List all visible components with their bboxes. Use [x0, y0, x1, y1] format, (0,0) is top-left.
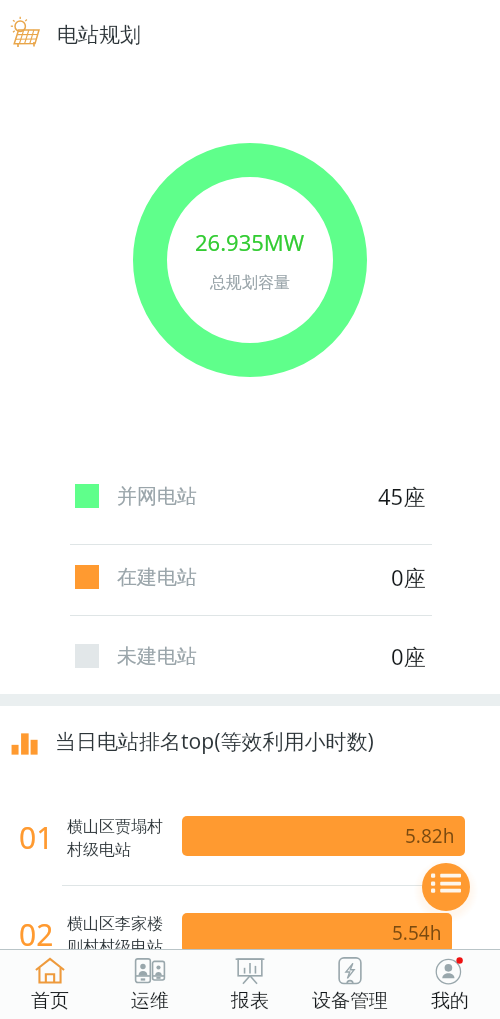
button[interactable]: 01 — [0, 790, 500, 882]
button[interactable]: 并网电站 — [0, 466, 500, 526]
staticText: 横山区李家楼 — [67, 914, 163, 934]
button[interactable]: 列表 — [422, 863, 470, 911]
staticText: 0座 — [391, 562, 426, 592]
staticText: 并网电站 — [117, 484, 197, 509]
button[interactable]: 我的 — [400, 950, 500, 1019]
staticText: 当日电站排名top(等效利用小时数) — [55, 727, 374, 756]
staticText: 在建电站 — [117, 565, 197, 590]
button[interactable]: 报表 — [200, 950, 300, 1019]
button[interactable]: 设备管理 — [300, 950, 400, 1019]
staticText: 01 — [19, 817, 54, 858]
staticText: 总规划容量 — [210, 273, 290, 293]
staticText: 报表 — [231, 989, 269, 1013]
staticText: 02 — [19, 914, 54, 955]
staticText: 未建电站 — [117, 644, 197, 669]
button[interactable]: 未建电站 — [0, 626, 500, 686]
staticText: 5.54h — [392, 920, 442, 946]
button[interactable]: 运维 — [100, 950, 200, 1019]
button[interactable]: 在建电站 — [0, 547, 500, 607]
staticText: 26.935MW — [195, 227, 305, 257]
staticText: 则村村级电站 — [67, 937, 163, 957]
staticText: 横山区贾塌村 — [67, 817, 163, 837]
button[interactable]: 02 — [0, 887, 500, 979]
staticText: 设备管理 — [312, 989, 388, 1013]
staticText: 0座 — [391, 641, 426, 671]
staticText: 首页 — [31, 989, 69, 1013]
staticText: 村级电站 — [67, 840, 131, 860]
staticText: 运维 — [131, 989, 169, 1013]
staticText: 45座 — [378, 481, 426, 511]
staticText: 5.82h — [405, 823, 455, 849]
button[interactable]: 首页 — [0, 950, 100, 1019]
staticText: 电站规划 — [57, 22, 141, 48]
staticText: 我的 — [431, 989, 469, 1013]
